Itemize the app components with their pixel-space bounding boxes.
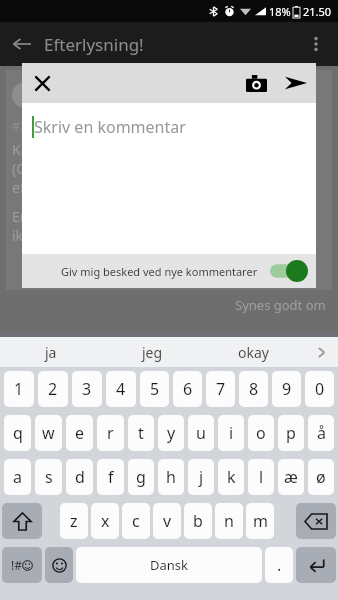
- button[interactable]: n: [215, 503, 243, 539]
- button[interactable]: f: [97, 459, 124, 495]
- staticText: b: [193, 510, 203, 532]
- button[interactable]: v: [153, 503, 181, 539]
- staticText: 1: [14, 378, 24, 400]
- button[interactable]: Symbols: [2, 547, 42, 583]
- staticText: m: [253, 510, 268, 532]
- button[interactable]: Camera: [236, 63, 276, 103]
- staticText: v: [163, 510, 172, 532]
- button[interactable]: æ: [278, 459, 304, 495]
- button[interactable]: u: [188, 415, 214, 451]
- staticText: p: [286, 422, 296, 444]
- staticText: a: [13, 466, 22, 488]
- staticText: 9: [282, 378, 292, 400]
- button[interactable]: Emoji and voice input: [45, 547, 73, 583]
- staticText: ef: [12, 178, 25, 197]
- button[interactable]: d: [66, 459, 93, 495]
- staticText: ja: [45, 343, 57, 362]
- button[interactable]: r: [97, 415, 124, 451]
- button[interactable]: a: [4, 459, 31, 495]
- staticText: o: [256, 422, 266, 444]
- staticText: #3: [12, 118, 27, 134]
- staticText: c: [132, 510, 140, 532]
- button[interactable]: 2: [38, 371, 68, 407]
- button[interactable]: q: [4, 415, 31, 451]
- staticText: n: [224, 510, 234, 532]
- staticText: l: [259, 466, 264, 488]
- button[interactable]: z: [60, 503, 88, 539]
- button[interactable]: m: [246, 503, 274, 539]
- staticText: 18%: [269, 4, 291, 19]
- staticText: 0: [315, 378, 325, 400]
- staticText: okay: [238, 343, 269, 362]
- staticText: e: [75, 422, 85, 444]
- button[interactable]: g: [128, 459, 154, 495]
- button[interactable]: More suggestions: [304, 337, 338, 367]
- staticText: z: [70, 510, 78, 532]
- button[interactable]: o: [248, 415, 274, 451]
- button[interactable]: s: [35, 459, 62, 495]
- button[interactable]: j: [188, 459, 214, 495]
- staticText: En: [12, 207, 29, 226]
- staticText: d: [75, 466, 85, 488]
- staticText: .: [277, 554, 282, 576]
- button[interactable]: okay: [203, 337, 304, 367]
- button[interactable]: Backspace: [296, 503, 336, 539]
- button[interactable]: b: [184, 503, 212, 539]
- button[interactable]: jeg: [102, 337, 203, 367]
- staticText: Synes godt om: [235, 296, 326, 314]
- button[interactable]: Dansk: [76, 547, 262, 583]
- button[interactable]: 4: [106, 371, 136, 407]
- staticText: 21.50: [303, 4, 332, 19]
- button[interactable]: Send: [276, 63, 316, 103]
- button[interactable]: k: [218, 459, 244, 495]
- button[interactable]: .: [265, 547, 293, 583]
- staticText: Dansk: [150, 556, 188, 574]
- staticText: g: [136, 466, 146, 488]
- button[interactable]: 9: [272, 371, 301, 407]
- button[interactable]: p: [278, 415, 304, 451]
- button[interactable]: 3: [72, 371, 102, 407]
- button[interactable]: l: [248, 459, 274, 495]
- button[interactable]: 1: [4, 371, 34, 407]
- staticText: s: [45, 466, 53, 488]
- staticText: 4: [116, 378, 126, 400]
- button[interactable]: More options: [294, 22, 338, 66]
- staticText: 6: [183, 378, 193, 400]
- button[interactable]: Back: [0, 22, 44, 66]
- staticText: (O: [12, 159, 28, 178]
- staticText: h: [166, 466, 176, 488]
- button[interactable]: w: [35, 415, 62, 451]
- button[interactable]: ø: [308, 459, 334, 495]
- staticText: Skriv en kommentar: [34, 116, 186, 138]
- staticText: w: [42, 422, 55, 444]
- button[interactable]: Shift: [2, 503, 42, 539]
- button[interactable]: Enter: [296, 547, 336, 583]
- staticText: ikk: [12, 226, 31, 245]
- button[interactable]: 7: [206, 371, 235, 407]
- staticText: x: [101, 510, 110, 532]
- button[interactable]: ja: [0, 337, 102, 367]
- button[interactable]: 5: [140, 371, 169, 407]
- staticText: !#: [11, 557, 22, 573]
- staticText: Efterlysning!: [44, 33, 144, 56]
- button[interactable]: e: [66, 415, 93, 451]
- staticText: 2: [48, 378, 58, 400]
- button[interactable]: c: [122, 503, 150, 539]
- button[interactable]: h: [158, 459, 184, 495]
- button[interactable]: i: [218, 415, 244, 451]
- button[interactable]: 0: [305, 371, 334, 407]
- button[interactable]: å: [308, 415, 334, 451]
- staticText: Giv mig besked ved nye kommentarer: [61, 264, 258, 279]
- staticText: ø: [316, 466, 326, 488]
- staticText: 7: [216, 378, 226, 400]
- button[interactable]: y: [158, 415, 184, 451]
- button[interactable]: 8: [239, 371, 268, 407]
- button[interactable]: x: [91, 503, 119, 539]
- button[interactable]: 6: [173, 371, 202, 407]
- button[interactable]: t: [128, 415, 154, 451]
- staticText: y: [167, 422, 176, 444]
- button[interactable]: Close: [22, 63, 62, 103]
- staticText: 8: [249, 378, 259, 400]
- button[interactable]: Giv mig besked ved nye kommentarer: [22, 254, 316, 288]
- staticText: æ: [284, 466, 298, 488]
